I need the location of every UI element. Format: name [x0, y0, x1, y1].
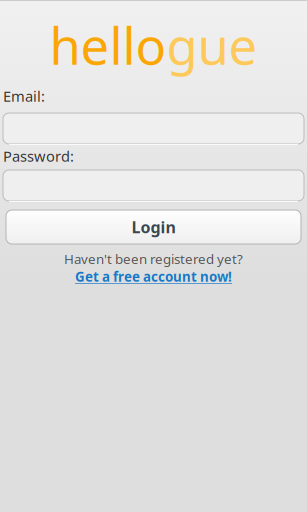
staticText: Haven't been registered yet?	[64, 250, 243, 268]
button[interactable]: Password	[0, 170, 307, 202]
staticText: Login	[131, 216, 175, 238]
button[interactable]: Email	[0, 113, 307, 145]
staticText: hello	[49, 11, 166, 79]
staticText: gue	[166, 11, 257, 79]
staticText: Email:	[3, 86, 45, 106]
button[interactable]: Get a free account now!	[0, 268, 307, 285]
staticText: Get a free account now!	[75, 268, 232, 285]
staticText: Password:	[3, 146, 74, 166]
button[interactable]: Login	[0, 210, 307, 244]
